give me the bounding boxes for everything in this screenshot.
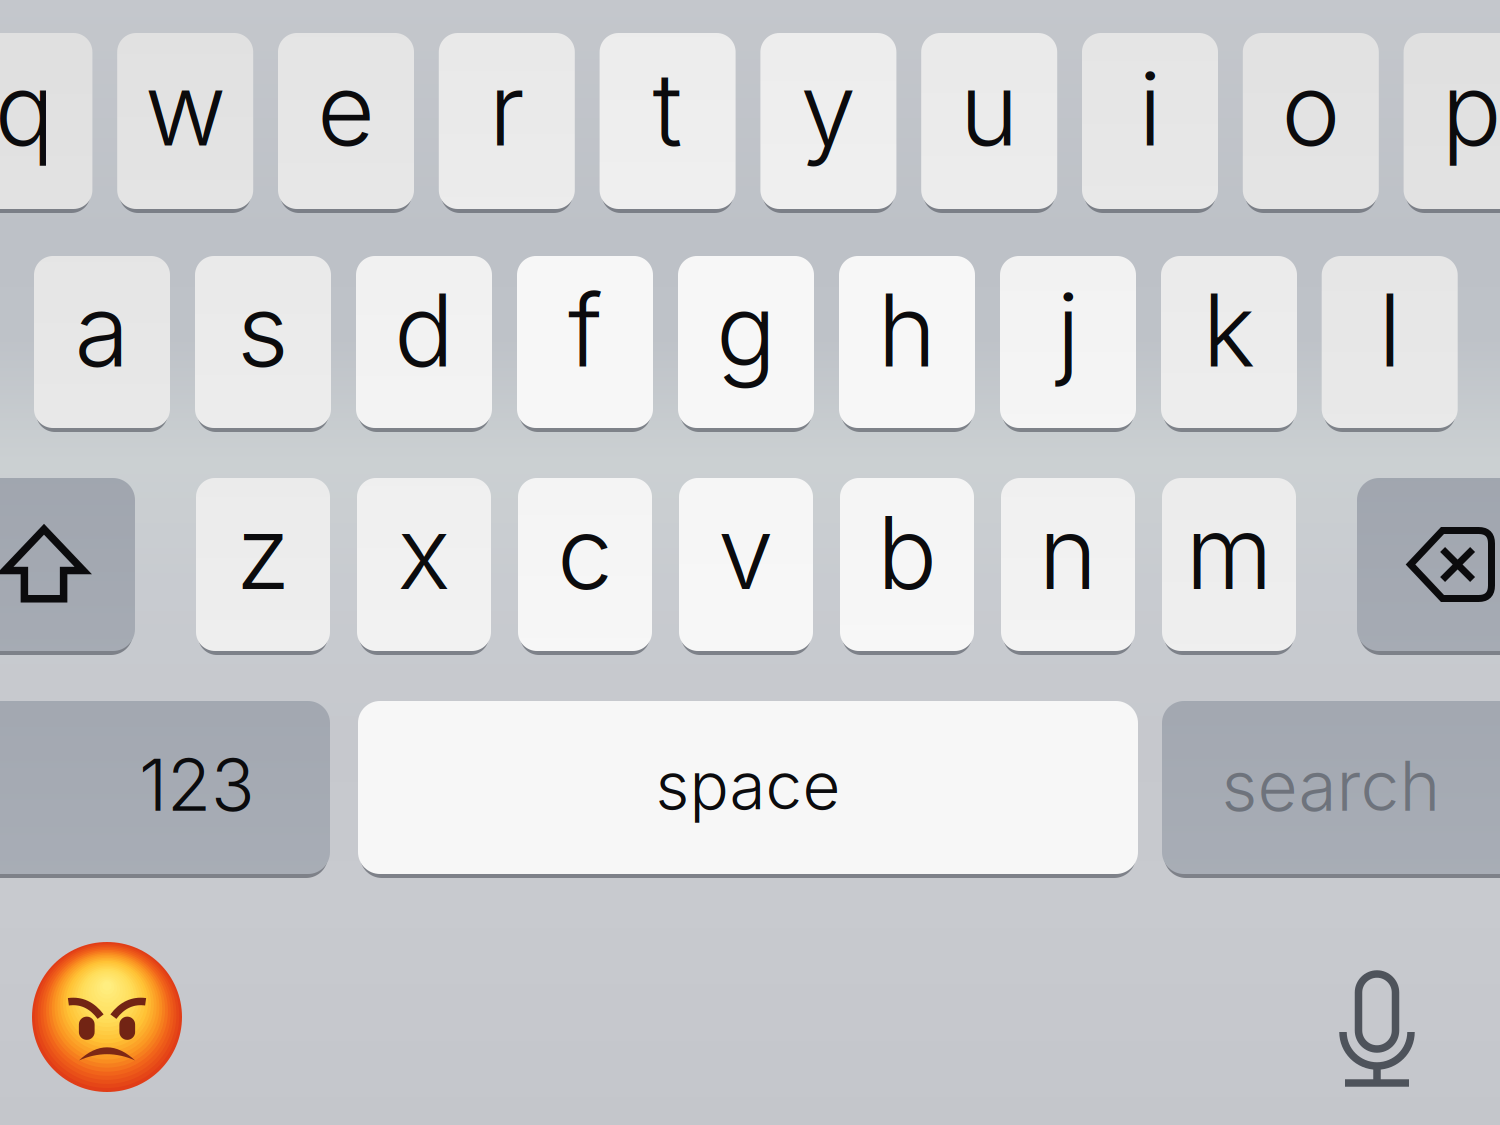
button[interactable]: n [1001,478,1135,651]
button[interactable]: Delete [1357,478,1500,651]
staticText: c [557,492,613,613]
button[interactable]: f [517,256,653,428]
staticText: s [237,269,289,390]
button[interactable]: b [840,478,974,651]
button[interactable]: p [1404,33,1500,209]
staticText: space [655,746,840,825]
button[interactable]: r [439,33,575,209]
staticText: i [1138,48,1161,169]
button[interactable]: i [1082,33,1218,209]
button[interactable]: o [1243,33,1379,209]
staticText: v [718,492,774,613]
button[interactable]: Shift [0,478,135,651]
staticText: l [1378,269,1401,390]
button[interactable]: a [34,256,170,428]
staticText: 123 [139,741,255,828]
staticText: h [877,269,936,390]
staticText: e [317,48,375,169]
button[interactable]: h [839,256,975,428]
button[interactable]: Dictate [1302,939,1452,1119]
staticText: d [394,269,454,390]
button[interactable]: t [600,33,736,209]
button[interactable]: y [760,33,896,209]
staticText: m [1185,492,1272,613]
button[interactable]: g [678,256,814,428]
staticText: n [1038,492,1097,613]
button[interactable]: v [679,478,813,651]
staticText: o [1281,48,1340,169]
button[interactable]: l [1322,256,1458,428]
button[interactable]: w [117,33,253,209]
staticText: f [568,269,602,390]
button[interactable]: k [1161,256,1297,428]
button[interactable]: space [358,701,1138,874]
staticText: u [960,48,1019,169]
button[interactable]: c [518,478,652,651]
button[interactable]: d [356,256,492,428]
button[interactable]: j [1000,256,1136,428]
button[interactable]: e [278,33,414,209]
staticText: r [489,48,525,169]
staticText: p [1442,48,1500,169]
staticText: g [716,269,776,390]
button[interactable]: x [357,478,491,651]
button[interactable]: m [1162,478,1296,651]
button[interactable]: q [0,33,92,209]
button[interactable]: search [1162,701,1500,874]
staticText: x [397,492,450,613]
staticText: j [1056,269,1079,390]
button[interactable]: Numbers [0,701,330,874]
staticText: search [1221,744,1440,827]
button[interactable]: Emoji [17,927,197,1107]
staticText: q [0,48,54,169]
button[interactable]: z [196,478,330,651]
staticText: k [1202,269,1255,390]
button[interactable]: s [195,256,331,428]
button[interactable]: u [921,33,1057,209]
staticText: y [800,48,856,169]
staticText: t [653,48,683,169]
staticText: a [74,269,129,390]
staticText: z [236,492,290,613]
staticText: b [877,492,937,613]
staticText: w [145,48,226,169]
